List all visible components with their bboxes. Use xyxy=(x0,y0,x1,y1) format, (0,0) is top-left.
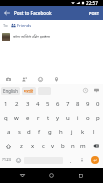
staticText: b xyxy=(61,142,65,150)
staticText: v xyxy=(51,142,55,150)
button[interactable]: 0 xyxy=(93,97,103,111)
button[interactable]: 2 xyxy=(11,97,22,111)
button[interactable]: p xyxy=(93,111,103,125)
staticText: 9 xyxy=(86,100,90,108)
button[interactable]: n xyxy=(68,139,78,153)
staticText: 3 xyxy=(26,100,30,108)
button[interactable]: h xyxy=(55,125,66,139)
staticText: 0 xyxy=(96,100,100,108)
button[interactable]: Camera xyxy=(0,72,16,84)
staticText: s xyxy=(18,128,21,136)
staticText: g xyxy=(48,128,52,136)
button[interactable]: k xyxy=(77,125,88,139)
button[interactable]: m xyxy=(78,139,88,153)
button[interactable]: Space xyxy=(23,153,64,167)
staticText: कोण जाणिले उशिर झालेला xyxy=(13,34,50,39)
staticText: 4 xyxy=(36,100,40,108)
button[interactable]: 4 xyxy=(33,97,43,111)
button[interactable]: Back xyxy=(16,169,29,182)
button[interactable]: Keyboard settings xyxy=(91,85,102,96)
button[interactable]: Feeling xyxy=(32,72,48,84)
button[interactable]: z xyxy=(16,139,27,153)
button[interactable]: t xyxy=(43,111,53,125)
staticText: j xyxy=(71,128,73,136)
button[interactable]: l xyxy=(88,125,99,139)
staticText: m xyxy=(80,142,86,150)
staticText: . xyxy=(70,157,72,164)
staticText: h xyxy=(59,128,63,136)
staticText: p xyxy=(96,114,100,122)
button[interactable]: 7 xyxy=(63,97,73,111)
button[interactable]: d xyxy=(24,125,34,139)
staticText: y xyxy=(56,114,60,122)
staticText: To: xyxy=(3,23,9,28)
button[interactable]: v xyxy=(48,139,58,153)
staticText: k xyxy=(81,128,85,136)
button[interactable]: x xyxy=(27,139,38,153)
staticText: c xyxy=(42,142,45,150)
button[interactable]: Tag people xyxy=(16,72,32,84)
button[interactable]: . xyxy=(64,153,77,167)
staticText: 8 xyxy=(76,100,80,108)
staticText: 1 xyxy=(4,100,8,108)
button[interactable]: 9 xyxy=(83,97,93,111)
button[interactable]: Recent xyxy=(80,85,91,96)
button[interactable]: Shift xyxy=(0,139,16,153)
staticText: e xyxy=(26,114,30,122)
staticText: f xyxy=(38,128,41,136)
button[interactable]: 3 xyxy=(22,97,33,111)
button[interactable]: a xyxy=(4,125,14,139)
button[interactable]: 8 xyxy=(73,97,83,111)
button[interactable]: 1 xyxy=(0,97,11,111)
staticText: Post to Facebook xyxy=(14,10,52,16)
button[interactable]: Enter xyxy=(86,153,103,167)
button[interactable]: POST xyxy=(85,6,103,20)
staticText: 22:57 xyxy=(86,0,98,6)
staticText: r xyxy=(37,114,40,122)
button[interactable]: ?123 xyxy=(0,153,14,167)
staticText: 2 xyxy=(15,100,19,108)
button[interactable]: r xyxy=(33,111,43,125)
button[interactable]: Recents xyxy=(74,169,87,182)
button[interactable]: 6 xyxy=(53,97,63,111)
staticText: u xyxy=(66,114,70,122)
button[interactable]: s xyxy=(14,125,24,139)
button[interactable]: o xyxy=(83,111,93,125)
button[interactable]: y xyxy=(53,111,63,125)
button[interactable]: g xyxy=(44,125,55,139)
staticText: n xyxy=(71,142,75,150)
button[interactable]: Friends xyxy=(11,23,32,28)
button[interactable]: मराठी xyxy=(22,87,36,95)
staticText: t xyxy=(47,114,50,122)
staticText: d xyxy=(27,128,31,136)
staticText: q xyxy=(4,114,8,122)
button[interactable]: i xyxy=(73,111,83,125)
staticText: w xyxy=(14,114,19,122)
button[interactable] xyxy=(77,153,86,167)
staticText: Friends xyxy=(17,23,32,28)
button[interactable]: 5 xyxy=(43,97,53,111)
button[interactable]: c xyxy=(38,139,48,153)
button[interactable]: Home xyxy=(45,169,58,182)
button[interactable]: j xyxy=(66,125,77,139)
button[interactable]: Backspace xyxy=(88,139,103,153)
staticText: 6 xyxy=(56,100,60,108)
button[interactable]: Back xyxy=(0,6,14,20)
staticText: z xyxy=(20,142,23,150)
button[interactable]: b xyxy=(58,139,68,153)
staticText: i xyxy=(77,114,79,122)
button[interactable]: f xyxy=(34,125,44,139)
button[interactable]: Emoji xyxy=(14,153,23,167)
button[interactable]: English xyxy=(1,87,20,95)
button[interactable]: Check in xyxy=(48,72,64,84)
button[interactable]: e xyxy=(22,111,33,125)
staticText: o xyxy=(86,114,90,122)
button[interactable]: q xyxy=(0,111,11,125)
staticText: English xyxy=(3,88,18,94)
staticText: x xyxy=(31,142,35,150)
staticText: a xyxy=(7,128,11,136)
button[interactable]: w xyxy=(11,111,22,125)
button[interactable]: u xyxy=(63,111,73,125)
staticText: l xyxy=(93,128,95,136)
